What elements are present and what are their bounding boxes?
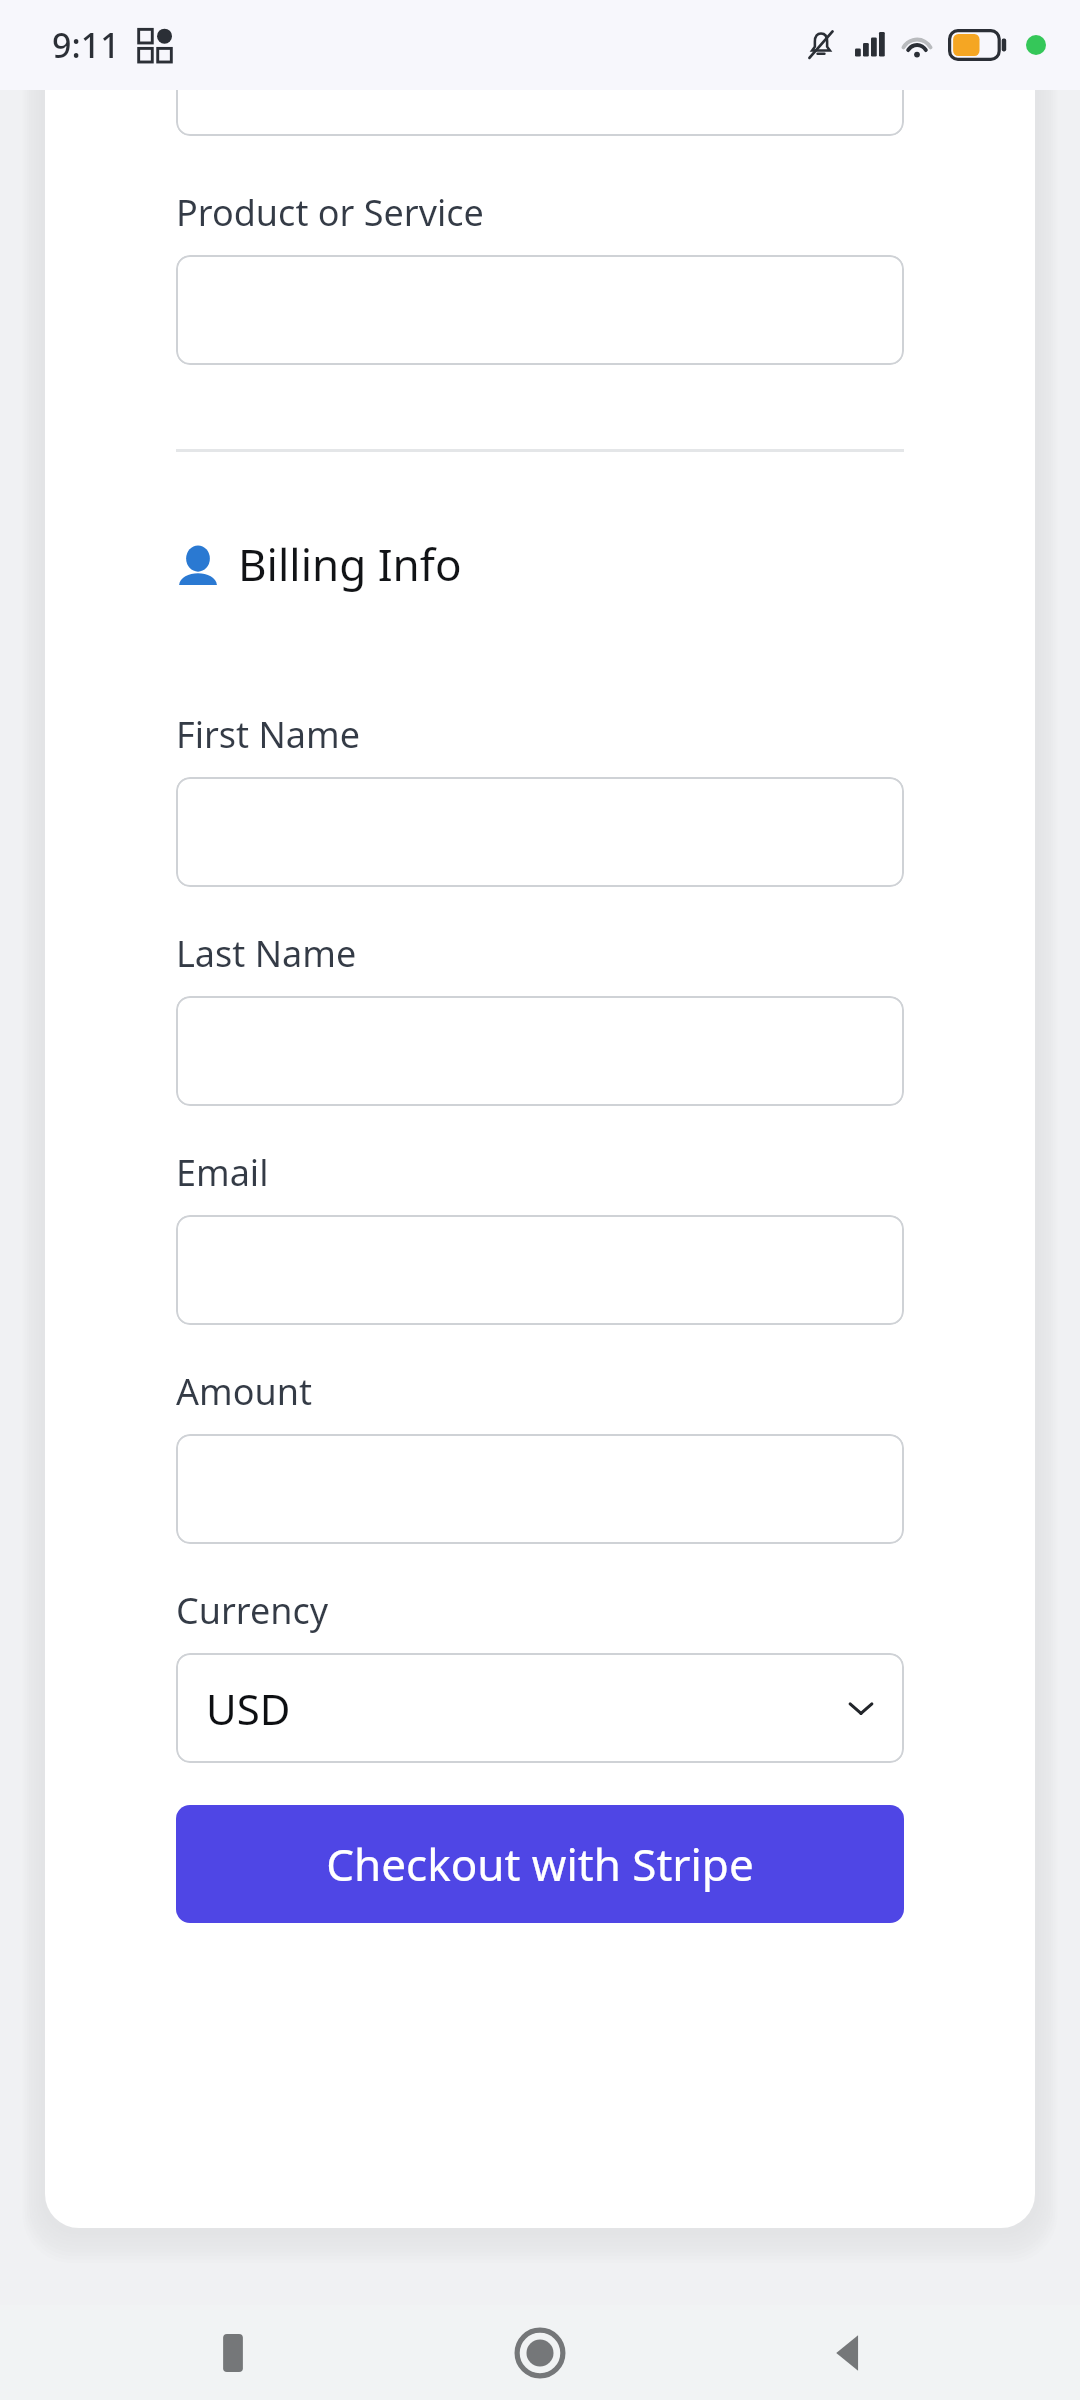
staticText: Last Name bbox=[176, 929, 357, 978]
button[interactable]: Home bbox=[465, 2305, 615, 2400]
staticText: Currency bbox=[176, 1586, 329, 1635]
button[interactable]: Recent apps bbox=[158, 2305, 308, 2400]
button[interactable] bbox=[176, 1434, 904, 1544]
staticText: USD bbox=[206, 1680, 291, 1737]
staticText: First Name bbox=[176, 710, 360, 759]
staticText: Amount bbox=[176, 1367, 312, 1416]
staticText: Checkout with Stripe bbox=[326, 1834, 754, 1894]
button[interactable]: Back bbox=[773, 2305, 923, 2400]
button[interactable] bbox=[176, 1215, 904, 1325]
staticText: 9:11 bbox=[52, 22, 120, 68]
button[interactable] bbox=[176, 777, 904, 887]
button[interactable]: USD bbox=[176, 1653, 904, 1763]
button[interactable]: Checkout with Stripe bbox=[176, 1805, 904, 1923]
button[interactable] bbox=[176, 26, 904, 136]
button[interactable] bbox=[176, 996, 904, 1106]
button[interactable] bbox=[176, 255, 904, 365]
staticText: Product or Service bbox=[176, 188, 484, 237]
staticText: Billing Info bbox=[238, 534, 462, 594]
staticText: Email bbox=[176, 1148, 269, 1197]
